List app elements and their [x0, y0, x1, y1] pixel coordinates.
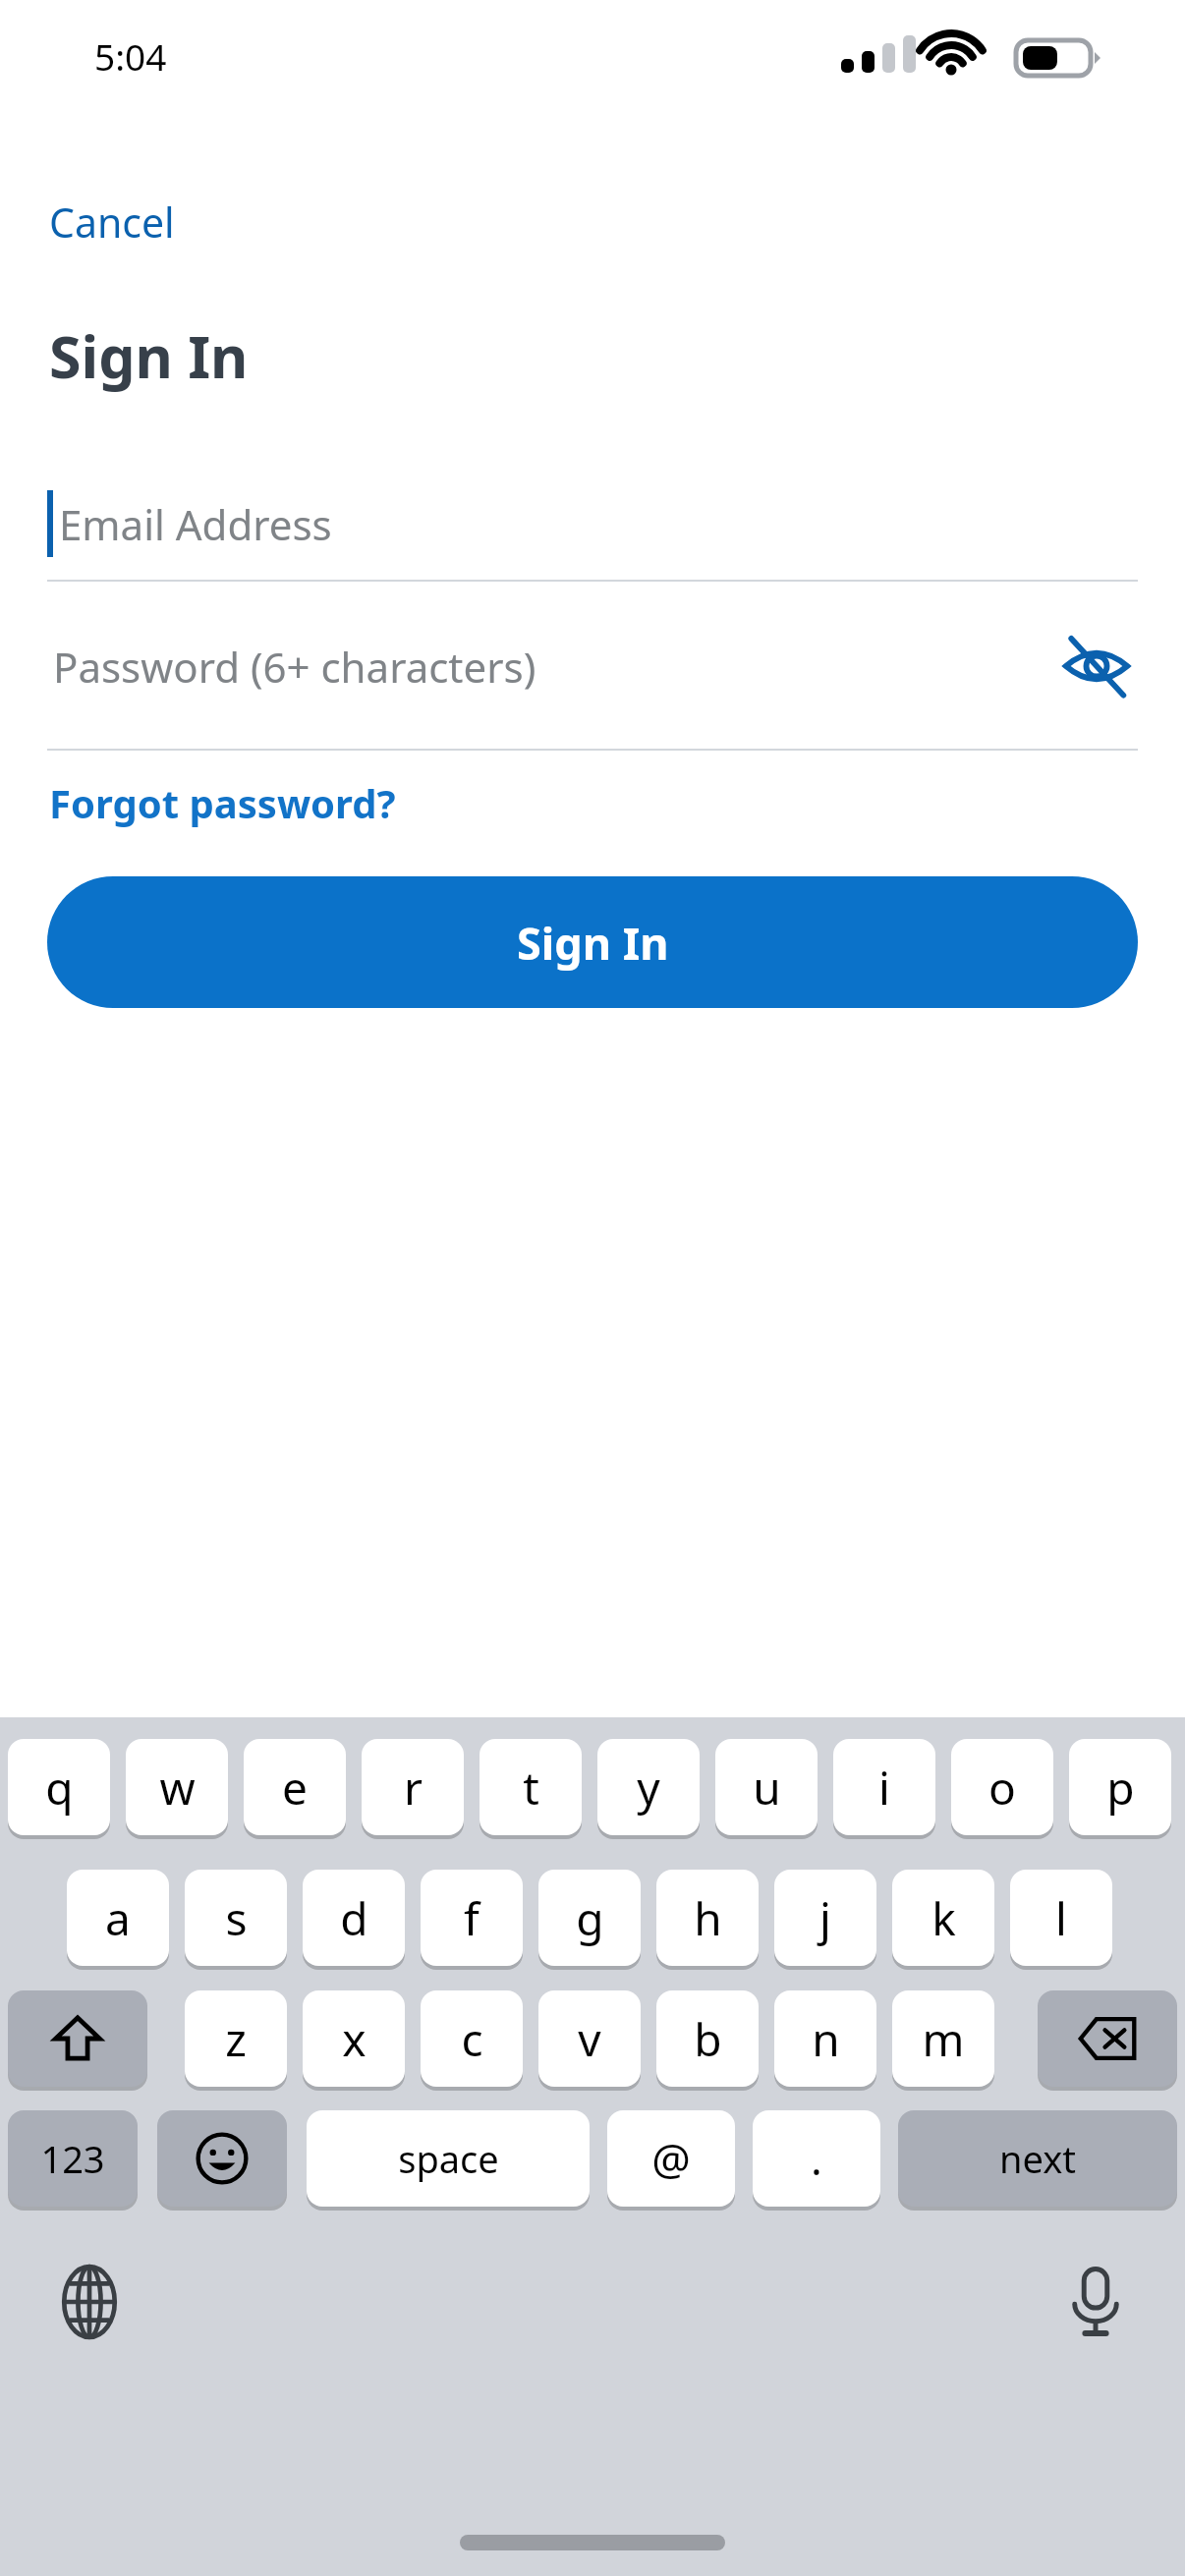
button[interactable]: j [774, 1870, 876, 1966]
staticText: k [931, 1887, 956, 1949]
button[interactable]: Show password [1049, 619, 1144, 713]
staticText: next [999, 2133, 1076, 2184]
button[interactable]: u [715, 1739, 818, 1835]
button[interactable]: p [1069, 1739, 1171, 1835]
staticText: j [819, 1887, 831, 1949]
staticText: m [922, 2008, 965, 2070]
button[interactable]: q [8, 1739, 110, 1835]
button[interactable]: Voice input [1042, 2248, 1150, 2356]
button[interactable]: b [656, 1990, 759, 2087]
staticText: Password (6+ characters) [53, 639, 536, 695]
button[interactable]: x [303, 1990, 405, 2087]
button[interactable]: w [126, 1739, 228, 1835]
staticText: o [988, 1757, 1016, 1819]
staticText: v [578, 2008, 601, 2070]
staticText: x [342, 2008, 367, 2070]
staticText: 5:04 [94, 31, 167, 81]
staticText: r [404, 1757, 423, 1819]
staticText: i [878, 1757, 890, 1819]
button[interactable]: space [307, 2110, 590, 2207]
button[interactable]: d [303, 1870, 405, 1966]
staticText: c [461, 2008, 483, 2070]
staticText: s [225, 1887, 248, 1949]
button[interactable]: f [421, 1870, 523, 1966]
staticText: Sign In [517, 913, 669, 973]
staticText: p [1106, 1757, 1135, 1819]
staticText: space [398, 2133, 499, 2184]
button[interactable]: Email Address [0, 466, 1185, 582]
button[interactable]: Cancel [37, 187, 187, 257]
button[interactable]: o [951, 1739, 1053, 1835]
button[interactable]: s [185, 1870, 287, 1966]
staticText: y [637, 1757, 660, 1819]
staticText: z [225, 2008, 247, 2070]
button[interactable] [8, 1990, 147, 2087]
button[interactable]: z [185, 1990, 287, 2087]
button[interactable]: Backspace [1038, 1990, 1177, 2087]
staticText: a [105, 1887, 131, 1949]
button[interactable]: m [892, 1990, 994, 2087]
button[interactable]: y [597, 1739, 700, 1835]
staticText: u [753, 1757, 781, 1819]
staticText: Email Address [59, 496, 332, 552]
staticText: f [464, 1887, 480, 1949]
button[interactable]: l [1010, 1870, 1112, 1966]
button[interactable]: g [538, 1870, 641, 1966]
button[interactable]: Change keyboard language [35, 2248, 143, 2356]
button[interactable]: 123 [8, 2110, 138, 2207]
button[interactable]: r [362, 1739, 464, 1835]
button[interactable]: k [892, 1870, 994, 1966]
button[interactable]: e [244, 1739, 346, 1835]
button[interactable]: Sign In [47, 876, 1138, 1008]
button[interactable]: h [656, 1870, 759, 1966]
staticText: Cancel [49, 195, 175, 250]
staticText: n [812, 2008, 840, 2070]
button[interactable]: i [833, 1739, 935, 1835]
staticText: Forgot password? [49, 776, 396, 829]
staticText: Sign In [49, 316, 249, 395]
button[interactable]: Password (6+ characters) [0, 582, 1185, 751]
staticText: @ [651, 2129, 691, 2188]
button[interactable]: next [898, 2110, 1177, 2207]
staticText: d [340, 1887, 368, 1949]
staticText: . [811, 2129, 822, 2188]
button[interactable]: . [753, 2110, 880, 2207]
button[interactable]: Forgot password? [37, 768, 408, 837]
button[interactable]: a [67, 1870, 169, 1966]
staticText: h [694, 1887, 722, 1949]
button[interactable]: v [538, 1990, 641, 2087]
button[interactable]: Emoji [157, 2110, 287, 2207]
staticText: e [282, 1757, 308, 1819]
staticText: g [576, 1887, 604, 1949]
staticText: b [694, 2008, 722, 2070]
staticText: w [159, 1757, 196, 1819]
staticText: q [45, 1757, 74, 1819]
staticText: t [523, 1757, 539, 1819]
button[interactable]: t [480, 1739, 582, 1835]
staticText: 123 [40, 2133, 105, 2184]
button[interactable]: c [421, 1990, 523, 2087]
button[interactable]: n [774, 1990, 876, 2087]
button[interactable]: @ [607, 2110, 735, 2207]
staticText: l [1055, 1887, 1067, 1949]
